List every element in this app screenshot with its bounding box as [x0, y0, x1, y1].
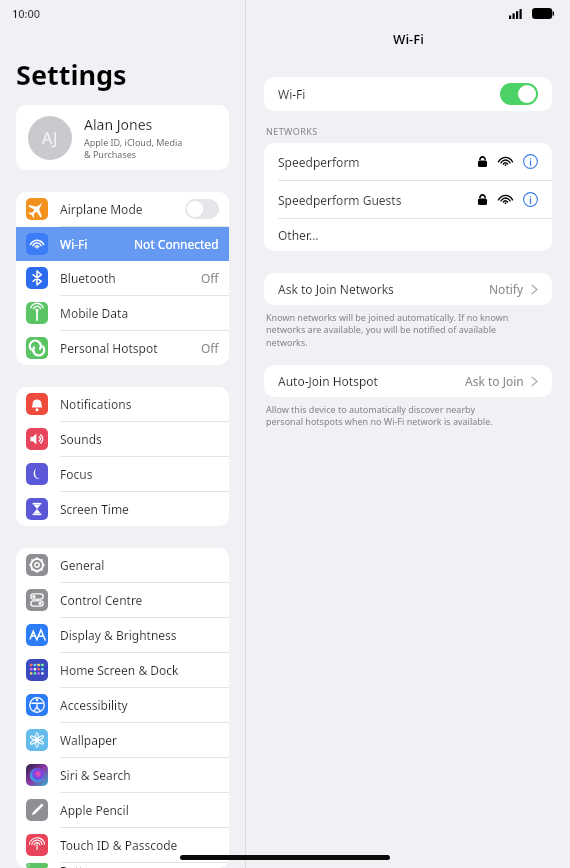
staticText: Speedperform [278, 154, 360, 170]
button[interactable]: Airplane Mode [16, 192, 229, 226]
staticText: Touch ID & Passcode [60, 837, 178, 853]
staticText: Bluetooth [60, 270, 116, 286]
staticText: Control Centre [60, 592, 143, 608]
staticText: Airplane Mode [60, 201, 143, 217]
staticText: Known networks will be joined automatica… [266, 311, 509, 349]
staticText: Auto-Join Hotspot [278, 373, 378, 389]
staticText: AJ [42, 127, 58, 149]
button[interactable]: General [16, 548, 229, 582]
button[interactable]: Battery [16, 863, 229, 868]
button[interactable]: Apple Pencil [16, 793, 229, 827]
staticText: Ask to Join [465, 373, 524, 389]
staticText: Screen Time [60, 501, 129, 517]
button[interactable]: Wallpaper [16, 723, 229, 757]
button[interactable]: Auto-Join Hotspot [264, 365, 552, 397]
staticText: Not Connected [134, 236, 219, 252]
staticText: Apple ID, iCloud, Media [84, 136, 183, 148]
button[interactable]: Network info for Speedperform [523, 154, 538, 169]
button[interactable]: Notifications [16, 387, 229, 421]
button[interactable]: Focus [16, 457, 229, 491]
button[interactable]: Display & Brightness [16, 618, 229, 652]
button[interactable]: Network info for Speedperform Guests [523, 192, 538, 207]
button[interactable]: Home Screen & Dock [16, 653, 229, 687]
staticText: Alan Jones [84, 115, 153, 134]
staticText: Allow this device to automatically disco… [266, 403, 493, 428]
button[interactable]: Screen Time [16, 492, 229, 526]
staticText: Ask to Join Networks [278, 281, 394, 297]
staticText: Personal Hotspot [60, 340, 158, 356]
staticText: Mobile Data [60, 305, 129, 321]
staticText: Other... [278, 227, 319, 243]
staticText: Wallpaper [60, 732, 118, 748]
button[interactable]: Speedperform [264, 143, 552, 180]
button[interactable]: Wi-Fi toggle [500, 83, 538, 105]
button[interactable]: Control Centre [16, 583, 229, 617]
button[interactable]: Bluetooth [16, 261, 229, 295]
staticText: Notify [489, 281, 524, 297]
staticText: 10:00 [12, 6, 41, 21]
button[interactable]: Accessibility [16, 688, 229, 722]
staticText: Off [201, 340, 219, 356]
button[interactable]: Airplane Mode toggle [185, 199, 219, 219]
button[interactable]: Mobile Data [16, 296, 229, 330]
staticText: NETWORKS [266, 125, 318, 137]
staticText: Battery [60, 863, 102, 868]
staticText: Display & Brightness [60, 627, 177, 643]
staticText: Notifications [60, 396, 132, 412]
button[interactable]: Wi-Fi [16, 227, 229, 261]
staticText: Settings [16, 56, 127, 93]
button[interactable]: AJ [16, 105, 229, 170]
button[interactable]: Other... [264, 219, 552, 251]
button[interactable]: Siri & Search [16, 758, 229, 792]
staticText: Apple Pencil [60, 802, 129, 818]
button[interactable]: Sounds [16, 422, 229, 456]
button[interactable]: Ask to Join Networks [264, 273, 552, 305]
staticText: Speedperform Guests [278, 192, 402, 208]
staticText: Wi-Fi [60, 236, 88, 252]
staticText: Wi-Fi [278, 86, 306, 102]
staticText: Off [201, 270, 219, 286]
staticText: General [60, 557, 105, 573]
button[interactable]: Wi-Fi [264, 77, 552, 111]
staticText: Siri & Search [60, 767, 131, 783]
button[interactable]: Speedperform Guests [264, 181, 552, 218]
staticText: Focus [60, 466, 93, 482]
staticText: & Purchases [84, 148, 137, 160]
staticText: Home Screen & Dock [60, 662, 179, 678]
button[interactable]: Touch ID & Passcode [16, 828, 229, 862]
button[interactable]: Personal Hotspot [16, 331, 229, 365]
staticText: Sounds [60, 431, 102, 447]
staticText: Accessibility [60, 697, 128, 713]
staticText: Wi-Fi [393, 30, 424, 48]
